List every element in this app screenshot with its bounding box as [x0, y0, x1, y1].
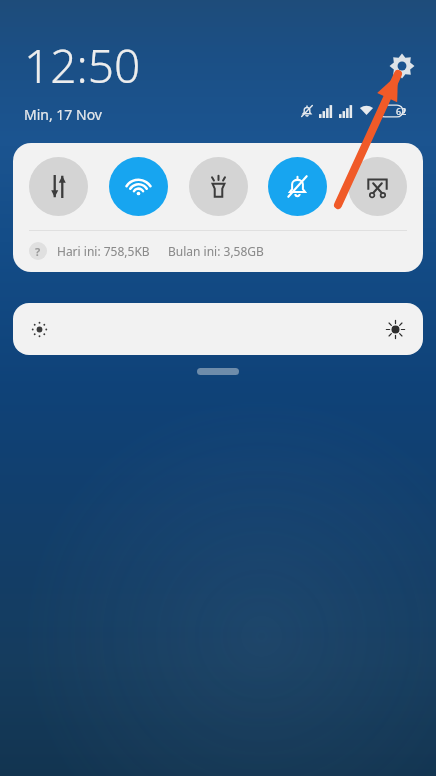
- staticText: ?: [35, 244, 41, 259]
- button[interactable]: ?: [29, 242, 407, 260]
- button[interactable]: Screenshot: [348, 157, 407, 216]
- staticText: Bulan ini: 3,58GB: [168, 243, 264, 259]
- button[interactable]: Mobile data: [29, 157, 88, 216]
- staticText: Hari ini: 758,5KB: [57, 243, 150, 259]
- staticText: Min, 17 Nov: [24, 105, 102, 124]
- button[interactable]: Flashlight: [189, 157, 248, 216]
- button[interactable]: Settings: [386, 50, 418, 82]
- button[interactable]: [13, 303, 423, 355]
- staticText: 62: [396, 105, 407, 117]
- button[interactable]: Wi-Fi: [109, 157, 168, 216]
- button[interactable]: Expand: [197, 368, 239, 375]
- staticText: 12:50: [24, 34, 141, 97]
- button[interactable]: Silent mode: [268, 157, 327, 216]
